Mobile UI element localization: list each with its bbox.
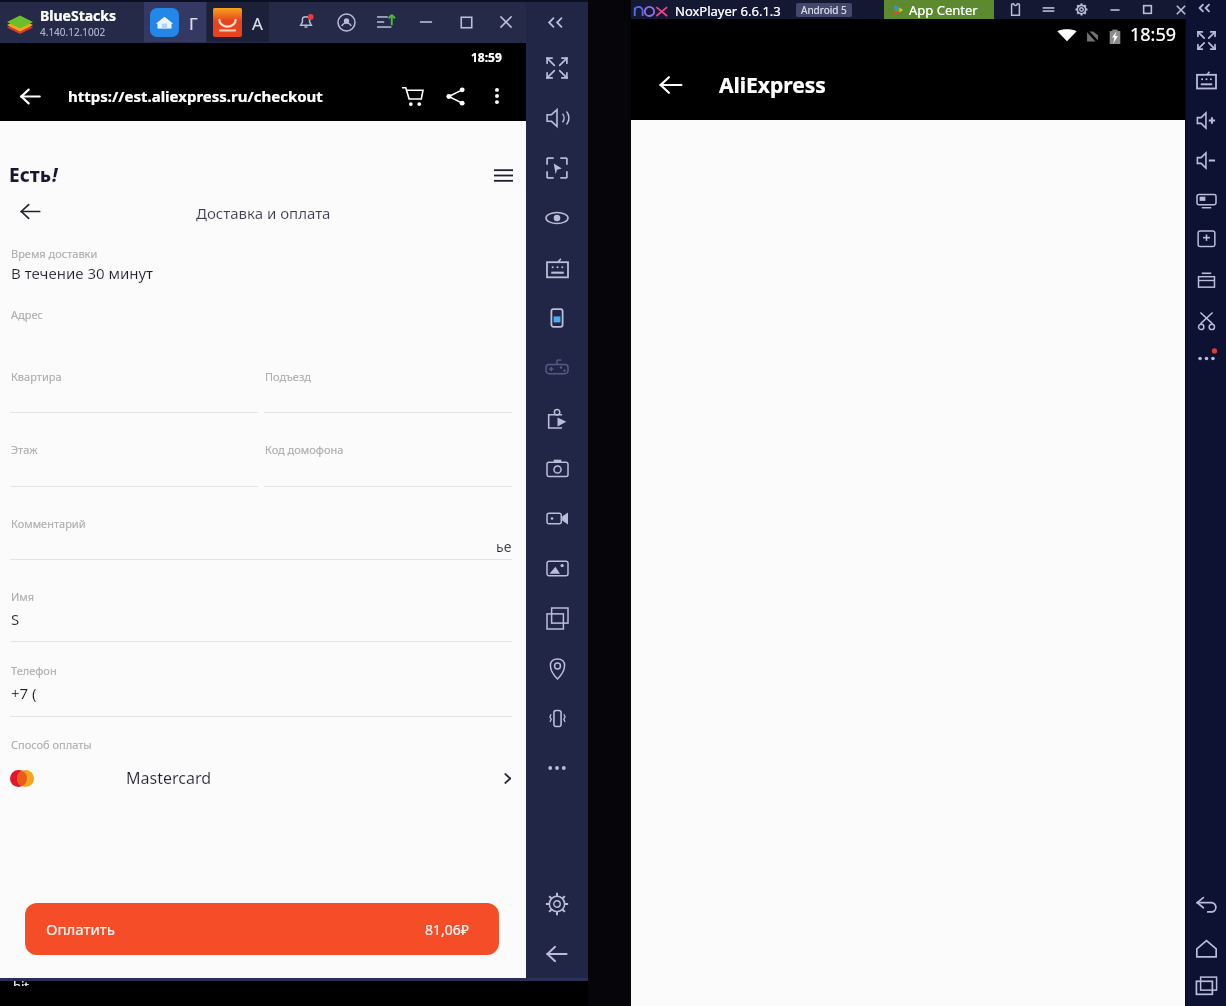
button[interactable]: Close [1164, 0, 1197, 19]
button[interactable]: More [1186, 338, 1226, 378]
button[interactable]: Fullscreen [526, 43, 588, 93]
button[interactable]: Collapse [1186, 0, 1226, 28]
button[interactable]: Theme [999, 0, 1032, 19]
button[interactable]: Volume up [1186, 100, 1226, 140]
button[interactable]: Volume down [1186, 140, 1226, 180]
staticText: bit [13, 981, 30, 986]
button[interactable]: Rotate [526, 293, 588, 343]
button[interactable]: Screenshot [526, 443, 588, 493]
button[interactable]: Collapse [526, 0, 588, 47]
button[interactable]: Back [1186, 886, 1226, 926]
button[interactable]: Menu [486, 158, 520, 192]
staticText: Время доставки [11, 246, 98, 261]
staticText: 4.140.12.1002 [40, 25, 106, 39]
button[interactable]: Location [526, 643, 588, 693]
staticText: +7 ( [11, 683, 37, 703]
staticText: Комментарий [11, 516, 86, 531]
button[interactable]: Cart [391, 71, 433, 121]
button[interactable]: Multi instance [526, 593, 588, 643]
staticText: https://est.aliexpress.ru/checkout [68, 86, 323, 106]
button[interactable]: Cut [1186, 300, 1226, 340]
staticText: Имя [11, 589, 35, 604]
staticText: Телефон [11, 663, 57, 678]
staticText: 18:59 [471, 49, 502, 65]
button[interactable]: Back [8, 71, 52, 121]
staticText: ! [52, 162, 58, 188]
staticText: Квартира [11, 369, 62, 384]
button[interactable]: Maximize [446, 5, 486, 39]
staticText: BlueStacks [40, 6, 117, 25]
staticText: App Center [909, 1, 978, 19]
button[interactable]: Install APK [1186, 220, 1226, 260]
staticText: Есть [9, 162, 52, 188]
staticText: AliExpress [719, 71, 826, 100]
button[interactable]: Macro [526, 393, 588, 443]
button[interactable]: More options [477, 71, 517, 121]
staticText: Оплатить [46, 919, 115, 939]
button[interactable]: Mastercard [0, 757, 526, 799]
button[interactable]: Shared folder [1186, 260, 1226, 300]
button[interactable]: App Center [884, 0, 994, 19]
button[interactable]: Gamepad [526, 343, 588, 393]
staticText: A [252, 12, 263, 35]
staticText: NoxPlayer 6.6.1.3 [675, 2, 781, 20]
button[interactable]: Minimize [406, 5, 446, 39]
staticText: 81,06₽ [425, 920, 469, 939]
staticText: Код домофона [265, 442, 344, 457]
button[interactable]: Account [326, 5, 366, 39]
button[interactable]: Оплатить [25, 903, 499, 955]
staticText: Mastercard [126, 767, 212, 789]
button[interactable]: Shake [526, 693, 588, 743]
button[interactable]: More [526, 743, 588, 793]
button[interactable]: Gallery [526, 543, 588, 593]
button[interactable]: Select [526, 143, 588, 193]
button[interactable]: Settings [526, 879, 588, 929]
button[interactable]: Eye [526, 193, 588, 243]
button[interactable]: Back [642, 50, 700, 120]
button[interactable]: Back [9, 190, 51, 232]
staticText: Адрес [11, 307, 43, 322]
staticText: Г [189, 12, 198, 35]
button[interactable]: Recents [1186, 965, 1226, 1005]
button[interactable]: AliExpress tab [207, 2, 269, 42]
staticText: В течение 30 минут [11, 263, 154, 283]
button[interactable]: Maximize [1131, 0, 1164, 19]
button[interactable]: Keyboard [1186, 60, 1226, 100]
staticText: 18:59 [1130, 22, 1177, 47]
button[interactable]: Keyboard [526, 243, 588, 293]
staticText: ье [496, 537, 512, 556]
button[interactable]: Menu [1032, 0, 1065, 19]
button[interactable]: Settings [1065, 0, 1098, 19]
staticText: Способ оплаты [11, 737, 92, 752]
button[interactable]: Fullscreen [1186, 20, 1226, 60]
button[interactable]: Display [1186, 180, 1226, 220]
button[interactable]: Notifications [286, 5, 326, 39]
button[interactable]: Share [434, 71, 476, 121]
button[interactable]: Back [526, 929, 588, 979]
button[interactable]: Close [486, 5, 526, 39]
staticText: Этаж [11, 442, 38, 457]
staticText: S [11, 609, 20, 629]
button[interactable]: Minimize [1098, 0, 1131, 19]
button[interactable]: Record [526, 493, 588, 543]
button[interactable]: Upload [366, 5, 406, 39]
staticText: Android 5 [801, 3, 847, 17]
button[interactable]: Home tab [144, 2, 206, 42]
button[interactable]: Home [1186, 928, 1226, 968]
staticText: Доставка и оплата [196, 203, 331, 223]
button[interactable]: Volume [526, 93, 588, 143]
staticText: Подъезд [265, 369, 311, 384]
